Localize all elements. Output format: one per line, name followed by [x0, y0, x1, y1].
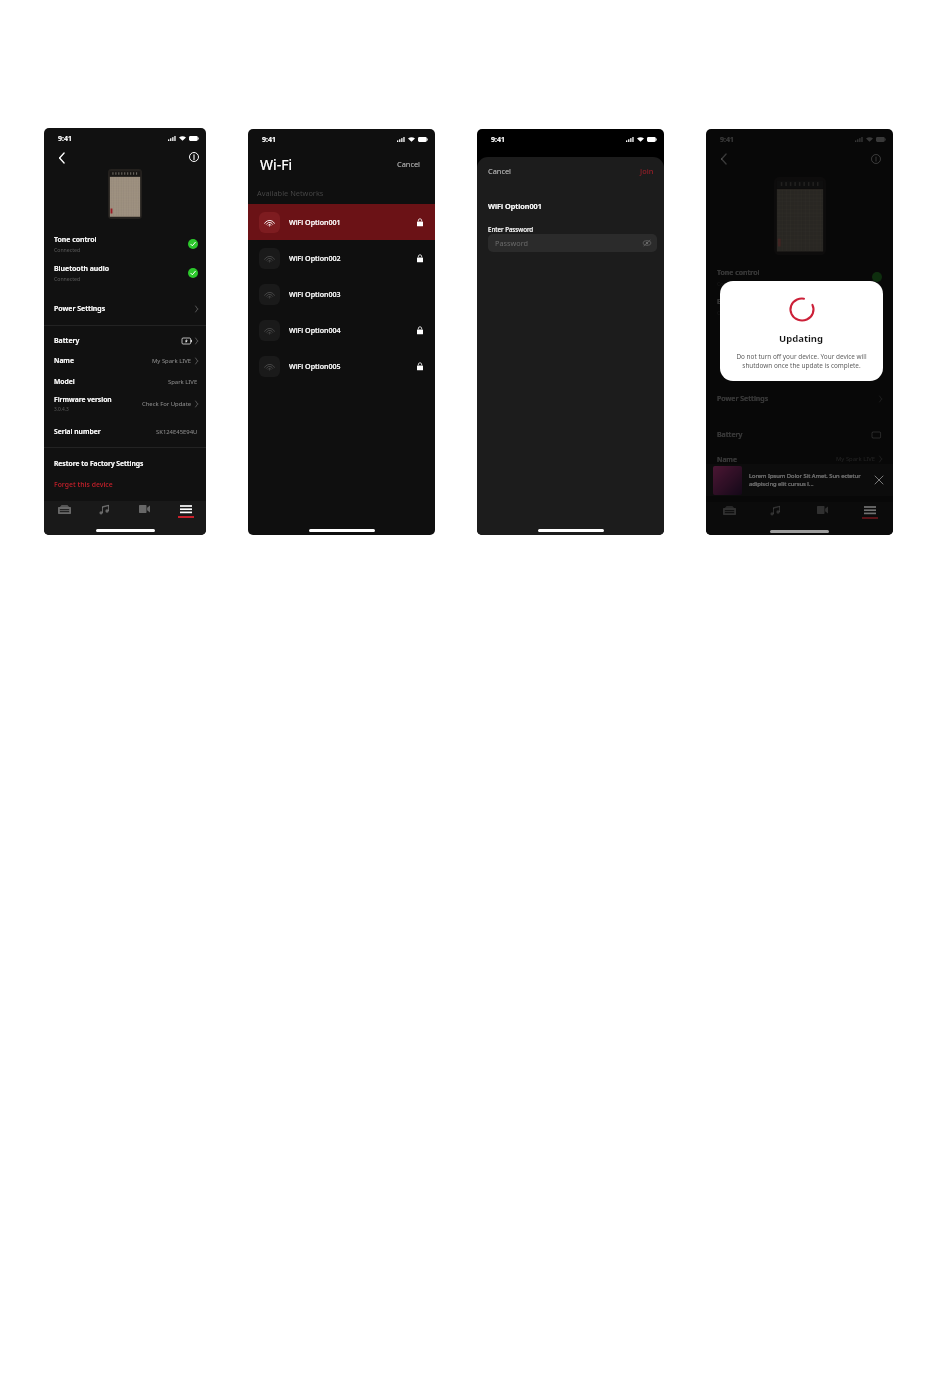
button[interactable]: Serial number — [44, 423, 206, 440]
staticText: Cancel — [397, 159, 421, 169]
button[interactable]: Password — [488, 234, 657, 252]
staticText: Lorem Ipsum Dolor Sit Amet. Sun ectetur … — [749, 472, 867, 488]
button[interactable]: Menu — [846, 502, 893, 535]
button[interactable]: WiFi Option001 — [248, 204, 435, 240]
staticText: 3.0.4.3 — [54, 406, 69, 413]
staticText: Password — [495, 238, 529, 248]
button[interactable]: Music — [84, 501, 124, 535]
staticText: Bluetooth audio — [54, 264, 110, 274]
staticText: My Spark LIVE — [152, 357, 192, 365]
staticText: SK124E45E94U — [156, 428, 198, 436]
staticText: Restore to Factory Settings — [54, 459, 144, 468]
staticText: Connected — [717, 280, 744, 287]
staticText: Connected — [54, 246, 81, 253]
button[interactable]: Firmware version — [44, 393, 206, 415]
staticText: WiFi Option002 — [289, 253, 341, 263]
staticText: Model — [54, 377, 75, 386]
staticText: Bluetooth audio — [717, 297, 773, 307]
button[interactable]: Cancel — [486, 164, 514, 178]
button[interactable]: WiFi Option004 — [248, 312, 435, 348]
button[interactable]: Back — [54, 150, 70, 166]
staticText: WiFi Option003 — [289, 289, 341, 299]
staticText: Updating — [779, 332, 824, 345]
button[interactable]: WiFi Option002 — [248, 240, 435, 276]
staticText: 9:41 — [262, 135, 276, 145]
staticText: Battery — [717, 430, 743, 440]
staticText: Power Settings — [717, 394, 769, 404]
staticText: Battery — [54, 336, 80, 346]
staticText: Power Settings — [54, 304, 106, 314]
button[interactable]: Amp — [706, 502, 752, 535]
button[interactable]: Video — [799, 502, 846, 535]
button[interactable]: Tone control — [44, 232, 206, 256]
staticText: Tone control — [54, 235, 97, 245]
staticText: WiFi Option005 — [289, 361, 341, 371]
staticText: Firmware version — [54, 395, 112, 404]
staticText: Tone control — [717, 268, 760, 278]
staticText: My Spark LIVE — [836, 455, 876, 463]
button[interactable]: Restore to Factory Settings — [44, 455, 206, 472]
staticText: WiFi Option001 — [488, 201, 542, 211]
button[interactable]: Forget this device — [44, 476, 206, 493]
staticText: Spark LIVE — [168, 378, 198, 386]
button[interactable]: WiFi Option003 — [248, 276, 435, 312]
staticText: Cancel — [488, 166, 512, 176]
staticText: Wi-Fi — [260, 155, 293, 174]
button[interactable]: Video — [124, 501, 165, 535]
button[interactable]: Lorem Ipsum Dolor Sit Amet. Sun ectetur … — [706, 464, 893, 496]
button[interactable]: Battery — [44, 332, 206, 350]
button[interactable]: Model — [44, 373, 206, 390]
staticText: Connected — [54, 275, 81, 282]
button[interactable]: WiFi Option005 — [248, 348, 435, 384]
button[interactable]: Name — [44, 352, 206, 369]
button[interactable]: Music — [752, 502, 799, 535]
staticText: 9:41 — [491, 135, 505, 145]
staticText: 9:41 — [58, 134, 72, 144]
staticText: 9:41 — [720, 135, 734, 145]
staticText: WiFi Option004 — [289, 325, 341, 335]
button[interactable]: Cancel — [395, 157, 423, 171]
button[interactable]: Close — [872, 473, 886, 487]
button[interactable]: Menu — [165, 501, 206, 535]
staticText: Connected — [717, 309, 744, 316]
staticText: WiFi Option001 — [289, 217, 341, 227]
staticText: Enter Password — [488, 225, 534, 233]
staticText: Do not turn off your device. Your device… — [731, 352, 872, 370]
button[interactable]: Power Settings — [44, 300, 206, 318]
staticText: Available Networks — [257, 188, 324, 198]
staticText: Forget this device — [54, 480, 113, 489]
button[interactable]: Bluetooth audio — [44, 261, 206, 285]
staticText: Serial number — [54, 427, 101, 436]
button[interactable]: Info — [186, 149, 202, 165]
staticText: Check For Update — [142, 400, 192, 408]
staticText: Name — [54, 356, 74, 365]
button[interactable]: Amp — [44, 501, 84, 535]
staticText: Name — [717, 455, 737, 464]
staticText: Join — [640, 166, 654, 176]
button[interactable]: Join — [638, 164, 656, 178]
